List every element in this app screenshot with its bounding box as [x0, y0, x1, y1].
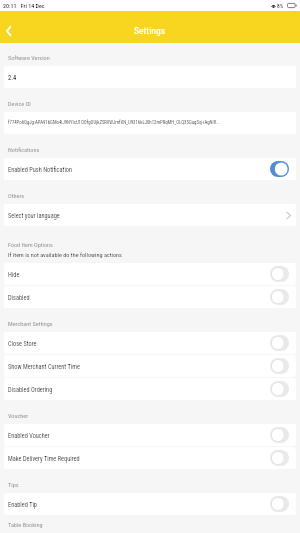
staticText: Table Booking: [8, 521, 43, 528]
staticText: Make Delivery Time Required: [8, 455, 270, 462]
button[interactable]: Disabled Ordering: [4, 378, 296, 400]
staticText: 20:11 Fri 14 Dec: [3, 2, 45, 9]
button[interactable]: Enabled Push Notification: [4, 158, 296, 180]
staticText: Select your language: [8, 212, 286, 219]
button[interactable]: Enabled Voucher: [4, 424, 296, 446]
staticText: Device ID: [8, 100, 31, 107]
button[interactable]: Hide: [4, 263, 296, 285]
staticText: 8%: [277, 3, 284, 9]
staticText: Tips: [8, 481, 19, 488]
staticText: Settings: [134, 25, 166, 36]
staticText: Enabled Tip: [8, 501, 270, 508]
staticText: Food Item Options: [8, 241, 53, 248]
staticText: Hide: [8, 271, 270, 278]
button[interactable]: Close Store: [4, 332, 296, 354]
staticText: Enabled Voucher: [8, 432, 270, 439]
button[interactable]: Enabled Tip: [4, 493, 296, 515]
staticText: Merchant Settings: [8, 320, 53, 327]
staticText: Enabled Push Notification: [8, 166, 270, 173]
staticText: Voucher: [8, 412, 29, 419]
staticText: Notifications: [8, 146, 40, 153]
button[interactable]: Show Merchant Current Time: [4, 355, 296, 377]
staticText: Disabled Ordering: [8, 386, 270, 393]
staticText: If item is not available do the followin…: [8, 251, 122, 258]
staticText: Others: [8, 192, 25, 199]
staticText: 2.4: [8, 74, 291, 81]
staticText: Disabled: [8, 294, 270, 301]
button[interactable]: Disabled: [4, 286, 296, 308]
button[interactable]: Select your language: [4, 204, 296, 226]
button[interactable]: 2.4: [4, 66, 296, 88]
button[interactable]: Back: [0, 20, 16, 42]
button[interactable]: f774Po6QgJg:APA91bGMo4iJ9NYIcU1OOfgOUjkZ…: [4, 112, 296, 134]
staticText: f774Po6QgJg:APA91bGMo4iJ9NYIcU1OOfgOUjkZ…: [8, 120, 291, 126]
staticText: Close Store: [8, 340, 270, 347]
staticText: Software Version: [8, 54, 50, 61]
staticText: Show Merchant Current Time: [8, 363, 270, 370]
button[interactable]: Make Delivery Time Required: [4, 447, 296, 469]
